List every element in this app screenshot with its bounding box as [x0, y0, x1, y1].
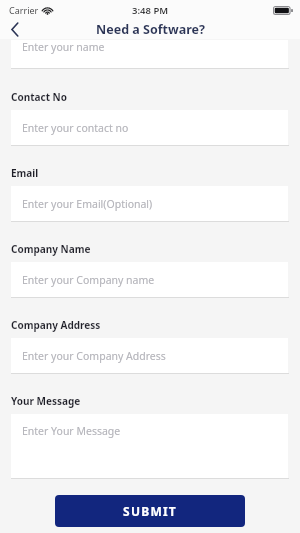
- button[interactable]: Enter your Company name: [11, 262, 288, 297]
- staticText: Carrier: [9, 4, 39, 16]
- button[interactable]: Enter your Email(Optional): [11, 186, 288, 221]
- staticText: Your Message: [11, 394, 81, 408]
- staticText: Need a Software?: [96, 21, 205, 38]
- button[interactable]: Enter your name: [11, 40, 288, 68]
- staticText: Enter your Email(Optional): [22, 197, 153, 211]
- button[interactable]: Back: [0, 20, 30, 39]
- staticText: Enter Your Message: [22, 424, 121, 438]
- button[interactable]: Enter your contact no: [11, 110, 288, 145]
- staticText: Email: [11, 166, 39, 180]
- staticText: Enter your Company name: [22, 273, 155, 287]
- staticText: Enter your name: [22, 40, 105, 54]
- staticText: Company Name: [11, 242, 91, 256]
- staticText: Enter your contact no: [22, 121, 129, 135]
- staticText: Company Address: [11, 318, 101, 332]
- staticText: Contact No: [11, 90, 67, 104]
- staticText: Enter your Company Address: [22, 349, 166, 363]
- button[interactable]: SUBMIT: [55, 495, 245, 527]
- button[interactable]: Enter your Company Address: [11, 338, 288, 373]
- staticText: 3:48 PM: [132, 4, 169, 17]
- button[interactable]: Enter Your Message: [11, 414, 288, 478]
- staticText: SUBMIT: [123, 503, 177, 519]
